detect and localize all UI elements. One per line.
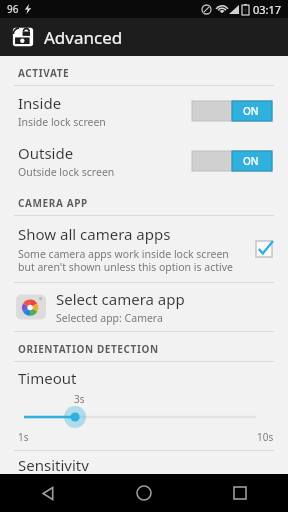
staticText: Sensitivity [18, 455, 89, 471]
staticText: Inside [18, 93, 62, 113]
button[interactable]: Sensitivity [0, 451, 288, 471]
button[interactable]: Recent apps [192, 474, 288, 512]
button[interactable]: Show all camera apps checkbox [254, 239, 274, 259]
staticText: Selected app: Camera [56, 311, 163, 325]
staticText: ON [243, 104, 259, 118]
staticText: Timeout [18, 368, 77, 388]
staticText: ACTIVATE [18, 66, 70, 80]
button[interactable]: Show all camera apps [0, 216, 288, 282]
staticText: 96 [7, 2, 19, 16]
other: App icon [12, 26, 34, 48]
staticText: 1s [18, 430, 29, 444]
staticText: Inside lock screen [18, 115, 106, 129]
button[interactable]: Back [0, 474, 96, 512]
button[interactable]: Select camera app [0, 283, 288, 331]
button[interactable]: Outside [0, 136, 288, 186]
staticText: Outside lock screen [18, 165, 115, 179]
button[interactable]: Toggle [192, 151, 272, 171]
button[interactable]: Home [96, 474, 192, 512]
staticText: Select camera app [56, 289, 185, 309]
button[interactable]: Inside [0, 86, 288, 136]
staticText: Outside [18, 143, 74, 163]
button[interactable]: Toggle [192, 101, 272, 121]
staticText: 10s [257, 430, 274, 444]
staticText: ON [243, 154, 259, 168]
staticText: 3s [74, 392, 85, 406]
staticText: Show all camera apps [18, 224, 171, 244]
staticText: CAMERA APP [18, 196, 88, 210]
button[interactable]: Timeout [0, 362, 288, 450]
staticText: Advanced [44, 26, 123, 49]
other: Timeout slider [18, 406, 274, 428]
staticText: ORIENTATION DETECTION [18, 342, 159, 356]
staticText: Some camera apps work inside lock screen… [18, 247, 246, 274]
staticText: 03:17 [253, 2, 282, 17]
